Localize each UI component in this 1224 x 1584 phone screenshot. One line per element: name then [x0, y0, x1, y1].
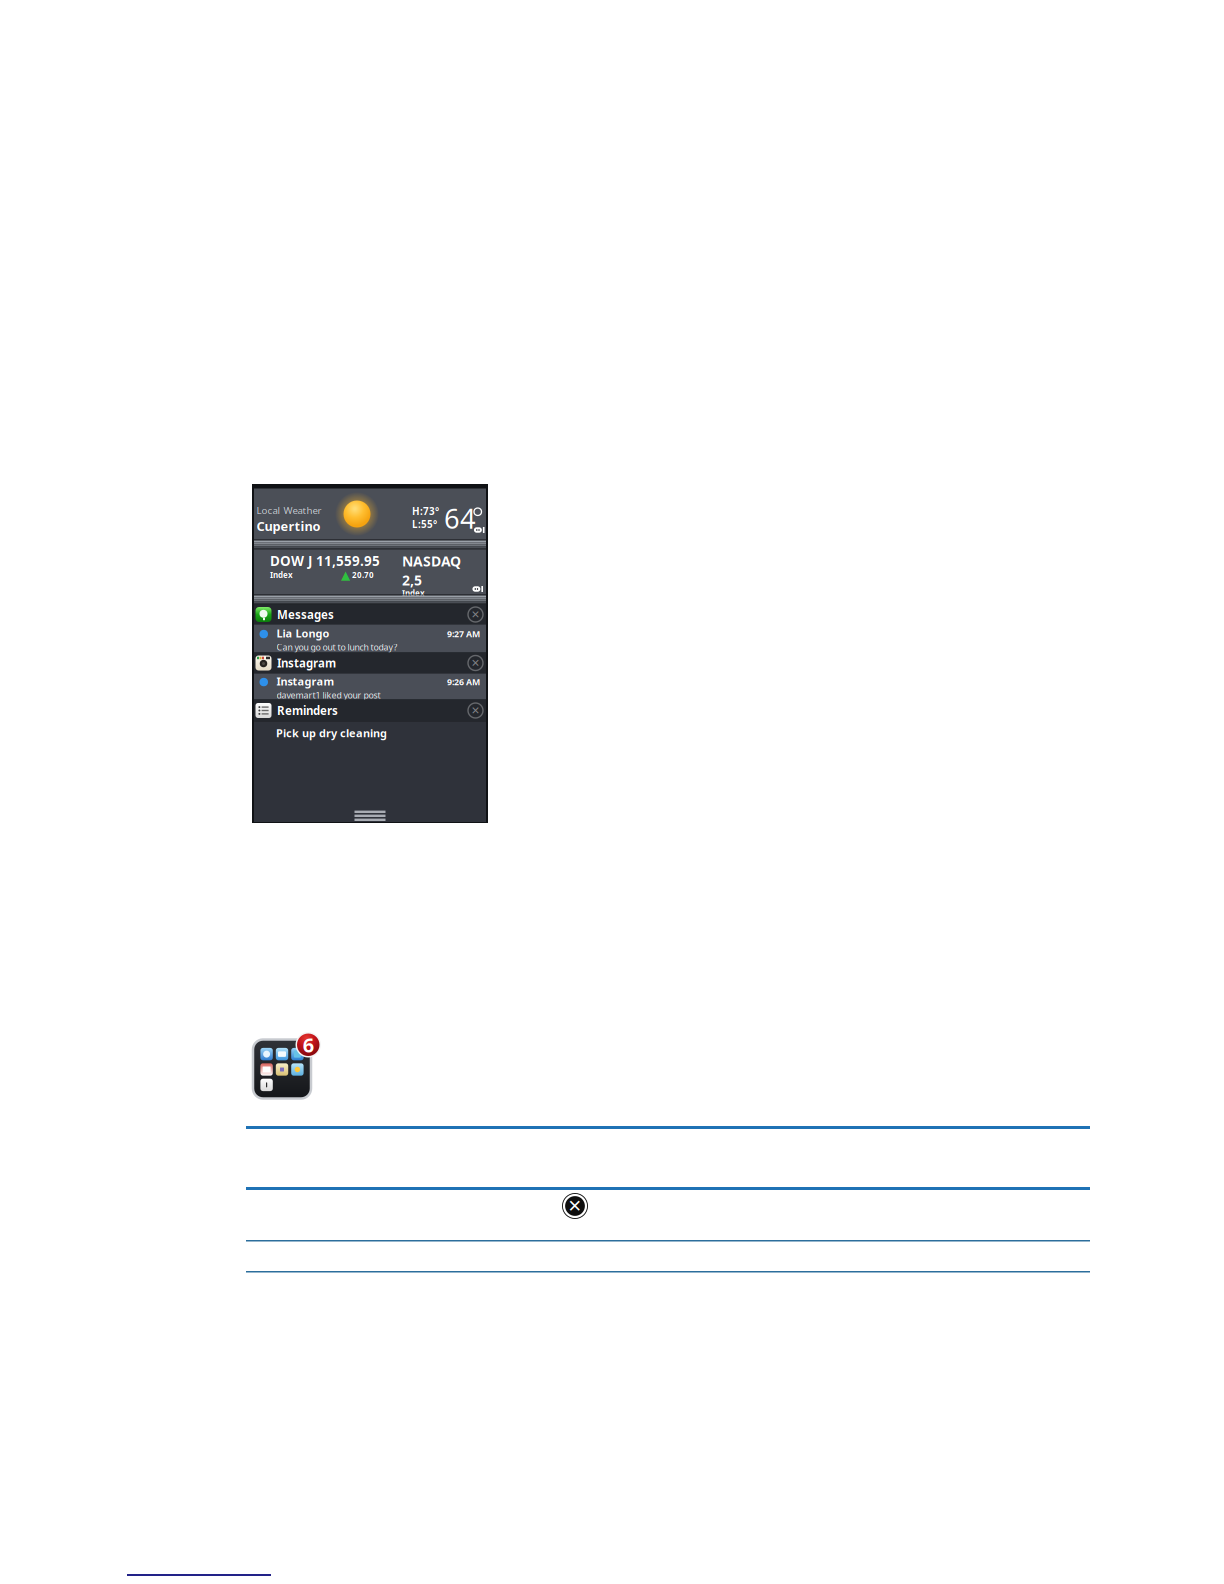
- staticText: 64: [444, 499, 476, 537]
- staticText: 20.70: [352, 569, 374, 580]
- staticText: Lia Longo: [276, 626, 329, 641]
- staticText: 9:27 AM: [447, 628, 480, 640]
- staticText: Pick up dry cleaning: [276, 725, 387, 740]
- button[interactable]: Reminders: [254, 699, 486, 721]
- staticText: Reminders: [277, 703, 338, 718]
- staticText: ▲: [341, 568, 350, 582]
- button[interactable]: Instagram: [254, 652, 486, 673]
- staticText: 6: [303, 1031, 314, 1058]
- staticText: H:73°: [412, 504, 439, 518]
- staticText: Index: [270, 569, 293, 580]
- staticText: Local Weather: [256, 503, 321, 517]
- staticText: 9:26 AM: [447, 676, 480, 688]
- staticText: ✕: [471, 608, 480, 620]
- staticText: ✕: [471, 704, 480, 716]
- staticText: NASDAQ 2,5: [402, 551, 461, 590]
- staticText: Instagram: [276, 674, 334, 689]
- button[interactable]: Close: [561, 1192, 589, 1220]
- staticText: Instagram: [277, 655, 336, 671]
- button[interactable]: Lia Longo: [254, 624, 486, 652]
- staticText: Can you go out to lunch today?: [276, 641, 397, 653]
- staticText: ✕: [567, 1196, 582, 1216]
- button[interactable]: Messages: [254, 604, 486, 624]
- staticText: ✕: [471, 657, 480, 669]
- staticText: L:55°: [412, 517, 437, 531]
- staticText: Index: [402, 588, 425, 598]
- button[interactable]: Instagram: [254, 673, 486, 699]
- staticText: davemart1 liked your post: [276, 689, 380, 701]
- staticText: Cupertino: [256, 517, 320, 535]
- button[interactable]: Folder with 6 unread notifications: [243, 1032, 321, 1106]
- staticText: Messages: [277, 607, 334, 622]
- staticText: DOW J 11,559.95: [270, 551, 380, 570]
